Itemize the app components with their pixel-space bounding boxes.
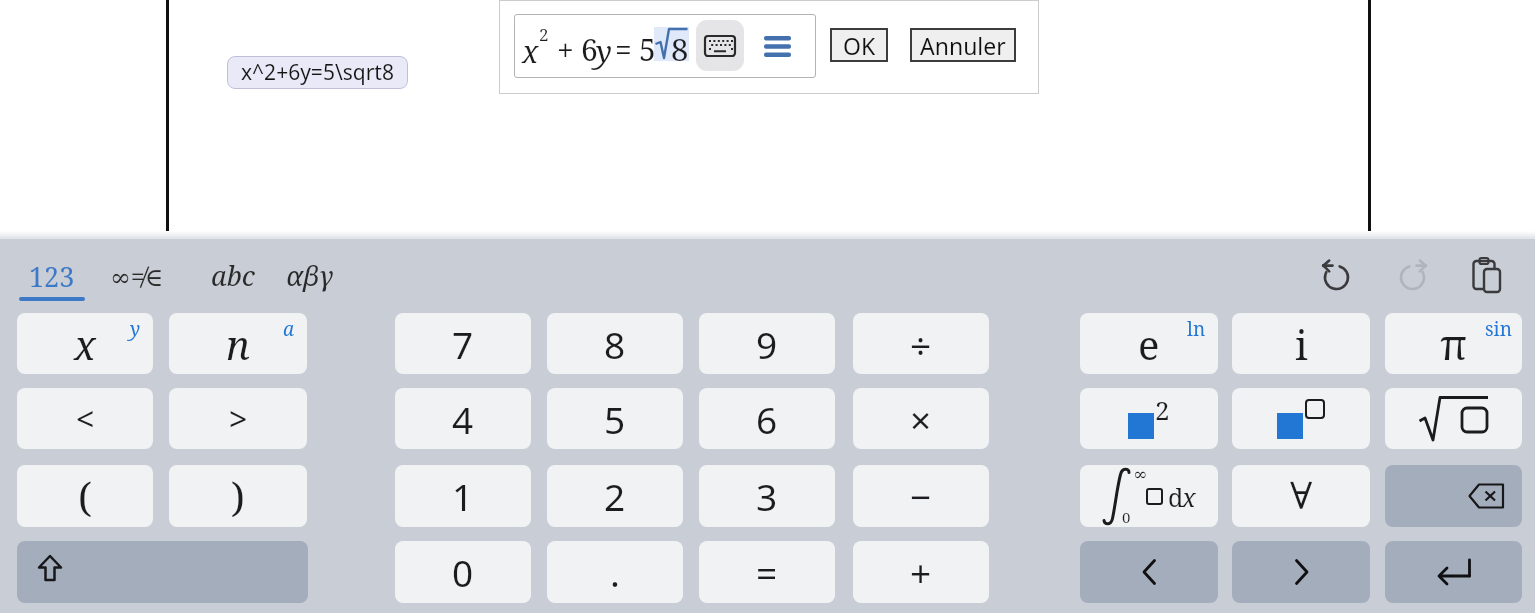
staticText: x bbox=[74, 317, 96, 371]
button[interactable]: ) bbox=[169, 465, 307, 527]
staticText: 8 bbox=[671, 28, 689, 70]
staticText: 7 bbox=[452, 319, 474, 369]
staticText: > bbox=[229, 397, 248, 441]
staticText: 1 bbox=[452, 471, 474, 521]
staticText: ÷ bbox=[910, 319, 932, 369]
button[interactable]: n bbox=[169, 313, 307, 374]
staticText: x bbox=[522, 31, 539, 72]
staticText: 4 bbox=[452, 394, 474, 444]
staticText: 0 bbox=[1122, 507, 1131, 527]
button[interactable] bbox=[17, 541, 308, 603]
staticText: x bbox=[1182, 480, 1196, 514]
button[interactable]: 6 bbox=[699, 388, 835, 449]
staticText: 8 bbox=[604, 319, 626, 369]
staticText: i bbox=[1295, 317, 1308, 371]
staticText: < bbox=[76, 397, 95, 441]
staticText: 2 bbox=[539, 23, 549, 46]
staticText: Annuler bbox=[920, 30, 1006, 61]
staticText: = bbox=[756, 547, 778, 597]
button[interactable]: = bbox=[699, 541, 835, 603]
button[interactable]: abc bbox=[211, 257, 255, 294]
staticText: 9 bbox=[756, 319, 778, 369]
staticText: 6 bbox=[581, 29, 598, 70]
button[interactable] bbox=[764, 36, 791, 57]
button[interactable]: 123 bbox=[19, 253, 85, 301]
button[interactable] bbox=[1080, 541, 1218, 603]
button[interactable]: 3 bbox=[699, 465, 835, 527]
staticText: sin bbox=[1485, 316, 1512, 342]
button[interactable]: > bbox=[169, 388, 307, 449]
staticText: 123 bbox=[29, 258, 75, 295]
button[interactable]: x^2+6y=5\sqrt8 bbox=[227, 56, 408, 89]
button[interactable]: < bbox=[17, 388, 153, 449]
button[interactable]: e bbox=[1080, 313, 1218, 374]
staticText: × bbox=[910, 394, 932, 444]
button[interactable]: 1 bbox=[395, 465, 531, 527]
button[interactable]: Annuler bbox=[910, 28, 1016, 62]
button[interactable]: π bbox=[1385, 313, 1522, 374]
staticText: 5 bbox=[639, 29, 656, 70]
staticText: + bbox=[910, 547, 932, 597]
staticText: αβγ bbox=[286, 257, 334, 294]
button[interactable] bbox=[696, 20, 744, 71]
button[interactable]: OK bbox=[830, 28, 888, 62]
button[interactable]: + bbox=[853, 541, 989, 603]
staticText: ∞ bbox=[1133, 465, 1148, 484]
button[interactable] bbox=[1385, 541, 1522, 603]
button[interactable] bbox=[1232, 388, 1370, 449]
button[interactable]: . bbox=[547, 541, 683, 603]
staticText: ∀ bbox=[1290, 475, 1313, 518]
button[interactable]: 7 bbox=[395, 313, 531, 374]
button[interactable]: x bbox=[17, 313, 153, 374]
button[interactable]: 9 bbox=[699, 313, 835, 374]
button[interactable]: ÷ bbox=[853, 313, 989, 374]
staticText: − bbox=[910, 471, 932, 521]
staticText: = bbox=[615, 29, 632, 70]
button[interactable]: − bbox=[853, 465, 989, 527]
button[interactable]: 2 bbox=[547, 465, 683, 527]
button[interactable] bbox=[1385, 465, 1522, 527]
button[interactable]: ∞≠∈ bbox=[110, 259, 164, 293]
button[interactable]: 5 bbox=[547, 388, 683, 449]
staticText: d bbox=[1168, 480, 1184, 514]
button[interactable]: 4 bbox=[395, 388, 531, 449]
staticText: y bbox=[130, 316, 141, 342]
staticText: + bbox=[557, 29, 574, 70]
staticText: 5 bbox=[604, 394, 626, 444]
staticText: x^2+6y=5\sqrt8 bbox=[241, 58, 394, 87]
staticText: 6 bbox=[756, 394, 778, 444]
staticText: π bbox=[1440, 315, 1468, 372]
button[interactable]: ∞ bbox=[1080, 465, 1218, 527]
button[interactable]: 2 bbox=[1080, 388, 1218, 449]
button[interactable] bbox=[1232, 541, 1370, 603]
staticText: ) bbox=[231, 469, 245, 523]
button[interactable] bbox=[1472, 257, 1506, 295]
button[interactable] bbox=[1319, 259, 1353, 293]
button[interactable]: × bbox=[853, 388, 989, 449]
staticText: n bbox=[226, 317, 250, 371]
button[interactable]: ( bbox=[17, 465, 153, 527]
button[interactable] bbox=[1385, 388, 1522, 449]
staticText: 2 bbox=[604, 471, 626, 521]
staticText: 0 bbox=[452, 547, 474, 597]
staticText: abc bbox=[211, 257, 255, 294]
staticText: ( bbox=[78, 469, 92, 523]
staticText: OK bbox=[843, 30, 876, 61]
staticText: a bbox=[283, 316, 295, 342]
button[interactable]: 8 bbox=[547, 313, 683, 374]
staticText: ∞≠∈ bbox=[110, 259, 164, 293]
staticText: 2 bbox=[1155, 392, 1170, 427]
staticText: 3 bbox=[756, 471, 778, 521]
button[interactable]: 0 bbox=[395, 541, 531, 603]
button[interactable]: αβγ bbox=[286, 257, 334, 294]
staticText: ln bbox=[1187, 316, 1206, 342]
staticText: y bbox=[596, 31, 612, 72]
staticText: . bbox=[610, 547, 620, 597]
button[interactable]: i bbox=[1232, 313, 1370, 374]
button[interactable] bbox=[1396, 259, 1430, 293]
button[interactable]: ∀ bbox=[1232, 465, 1370, 527]
staticText: e bbox=[1138, 317, 1160, 371]
